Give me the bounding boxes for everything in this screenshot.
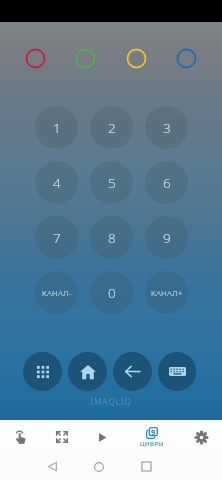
button[interactable]: 1 <box>35 106 78 149</box>
button[interactable]: Keyboard <box>158 352 196 391</box>
staticText: 2 <box>108 119 116 137</box>
staticText: 6 <box>163 174 171 192</box>
button[interactable]: КАНАЛ- <box>35 271 78 314</box>
staticText: 7 <box>53 229 61 247</box>
button[interactable]: 7 <box>35 216 78 259</box>
staticText: 9 <box>163 229 171 247</box>
staticText: КАНАЛ- <box>42 287 72 298</box>
button[interactable]: Settings <box>181 421 222 453</box>
button[interactable]: КАНАЛ+ <box>145 271 188 314</box>
button[interactable]: Colour key <box>176 48 197 69</box>
button[interactable]: Colour key <box>75 48 96 69</box>
button[interactable]: Back <box>40 453 64 480</box>
button[interactable]: 8 <box>90 216 133 259</box>
button[interactable]: 0 <box>90 271 133 314</box>
button[interactable]: Home <box>68 352 107 391</box>
staticText: ЦИФРЫ <box>140 440 164 448</box>
button[interactable]: 5 <box>90 161 133 204</box>
button[interactable]: Colour key <box>25 48 46 69</box>
button[interactable]: 4 <box>35 161 78 204</box>
button[interactable]: Recents <box>134 453 158 480</box>
staticText: 8 <box>108 229 116 247</box>
button[interactable]: 9 <box>145 216 188 259</box>
button[interactable]: 2 <box>90 106 133 149</box>
button[interactable]: Fullscreen <box>41 421 82 453</box>
button[interactable]: 6 <box>145 161 188 204</box>
staticText: 9 <box>151 427 156 437</box>
button[interactable]: Apps <box>23 352 62 391</box>
button[interactable]: Touchpad <box>0 421 41 453</box>
staticText: 0 <box>108 284 116 302</box>
button[interactable]: Back <box>113 352 152 391</box>
button[interactable]: 3 <box>145 106 188 149</box>
staticText: 5 <box>108 174 116 192</box>
staticText: 3 <box>163 119 171 137</box>
staticText: IMAQLIQ <box>0 396 222 408</box>
button[interactable]: Colour key <box>126 48 147 69</box>
button[interactable]: Play <box>82 421 123 453</box>
button[interactable]: 9 <box>123 421 181 453</box>
staticText: 1 <box>53 119 61 137</box>
staticText: КАНАЛ+ <box>151 287 183 298</box>
staticText: 4 <box>53 174 61 192</box>
button[interactable]: Home <box>87 453 111 480</box>
